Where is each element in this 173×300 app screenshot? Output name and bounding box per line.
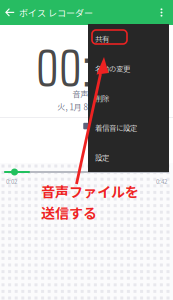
button[interactable]: 削除 (88, 83, 169, 113)
staticText: 設定 (95, 152, 109, 163)
button[interactable]: 設定 (88, 142, 169, 172)
button[interactable]: 共有 (88, 24, 169, 54)
button[interactable]: More options (157, 0, 173, 25)
button[interactable]: 着信音に設定 (88, 113, 169, 142)
staticText: 着信音に設定 (95, 122, 137, 133)
button[interactable]: Back (0, 0, 19, 25)
staticText: 火, 1月 8日, 2019 (57, 101, 115, 113)
button[interactable]: 名前の変更 (88, 54, 169, 83)
staticText: ボイス レコーダー (19, 6, 93, 19)
staticText: 名前の変更 (95, 63, 130, 74)
button[interactable]: Stop (78, 118, 95, 134)
staticText: 削除 (95, 93, 109, 103)
staticText: 音声008 (72, 88, 100, 100)
staticText: 共有 (95, 33, 109, 44)
staticText: 音声ファイルを (41, 181, 139, 201)
staticText: 0:42 (156, 177, 167, 186)
staticText: 0:02 (6, 177, 17, 186)
staticText: 00:00 (36, 26, 137, 110)
staticText: 送信する (41, 202, 97, 223)
